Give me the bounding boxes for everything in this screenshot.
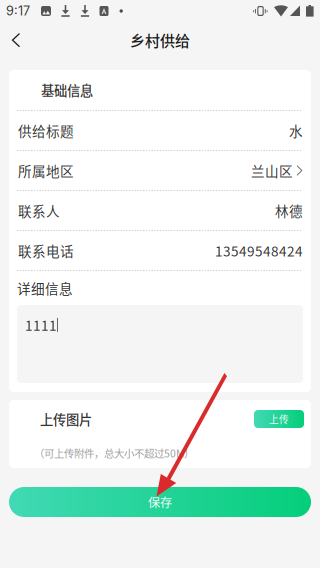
staticText: 13549548424 <box>215 241 303 260</box>
staticText: 联系人 <box>18 201 60 220</box>
staticText: 保存 <box>148 493 172 511</box>
button[interactable]: 保存 <box>9 487 311 517</box>
staticText: 上传图片 <box>40 409 92 429</box>
button[interactable]: 联系人 <box>9 191 311 230</box>
staticText: 9:17 <box>6 3 30 19</box>
button[interactable]: 联系电话 <box>9 231 311 270</box>
staticText: 上传 <box>269 412 289 426</box>
staticText: 林德 <box>275 201 303 220</box>
staticText: 基础信息 <box>41 80 93 100</box>
button[interactable]: 上传 <box>254 410 304 428</box>
staticText: 供给标题 <box>18 121 74 140</box>
button[interactable]: 供给标题 <box>9 111 311 150</box>
staticText: 兰山区 <box>251 161 293 180</box>
staticText: （可上传附件，总大小不超过50M） <box>34 445 194 461</box>
staticText: 乡村供给 <box>130 29 190 51</box>
button[interactable]: Back <box>0 22 32 58</box>
staticText: 1111 <box>25 315 57 335</box>
staticText: 详细信息 <box>17 278 73 298</box>
staticText: 水 <box>289 121 303 140</box>
button[interactable]: 所属地区 <box>9 151 311 190</box>
staticText: 所属地区 <box>18 161 74 180</box>
staticText: 联系电话 <box>18 241 74 260</box>
